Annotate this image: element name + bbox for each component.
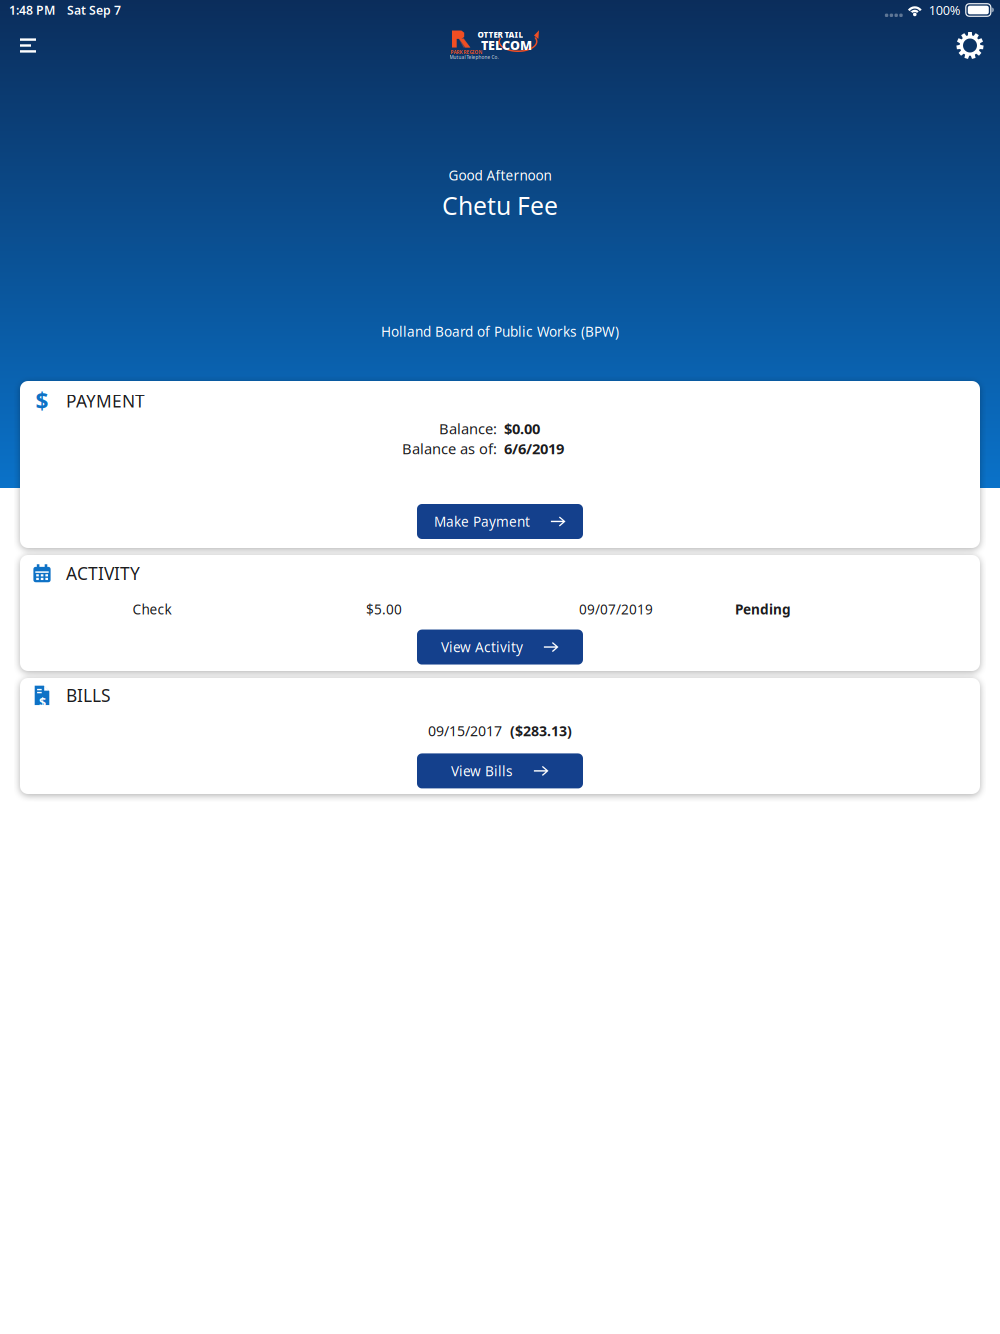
staticText: BILLS [66, 684, 111, 707]
staticText: TELCOM [481, 37, 532, 54]
staticText: Balance as of: [402, 439, 497, 459]
staticText: 1:48 PM [9, 2, 55, 18]
staticText: 09/15/2017 [428, 721, 502, 740]
staticText: Pending [735, 600, 791, 618]
button[interactable]: View Activity [417, 630, 583, 665]
staticText: PAYMENT [66, 389, 145, 413]
staticText: Make Payment [434, 512, 530, 531]
staticText: OTTER TAIL [477, 29, 523, 40]
button[interactable]: View Bills [417, 753, 583, 788]
staticText: Sat Sep 7 [67, 2, 121, 18]
button[interactable]: Settings [947, 21, 993, 69]
staticText: Mutual Telephone Co. [450, 54, 499, 60]
staticText: 09/07/2019 [579, 600, 653, 618]
staticText: 6/6/2019 [504, 439, 564, 459]
staticText: Chetu Fee [442, 188, 558, 222]
staticText: Check [132, 600, 171, 618]
staticText: ACTIVITY [66, 561, 140, 585]
staticText: 100% [929, 1, 961, 19]
staticText: PARK REGION [450, 49, 482, 55]
staticText: View Activity [441, 638, 523, 656]
staticText: $0.00 [504, 419, 540, 439]
button[interactable]: Make Payment [417, 504, 583, 539]
staticText: $5.00 [366, 600, 402, 618]
staticText: $ [39, 694, 46, 711]
staticText: ($283.13) [510, 721, 572, 740]
staticText: $ [35, 386, 48, 416]
staticText: View Bills [451, 762, 513, 780]
staticText: Balance: [439, 419, 497, 439]
button[interactable]: Menu [6, 21, 50, 69]
staticText: Holland Board of Public Works (BPW) [381, 322, 619, 341]
staticText: Good Afternoon [448, 166, 551, 184]
